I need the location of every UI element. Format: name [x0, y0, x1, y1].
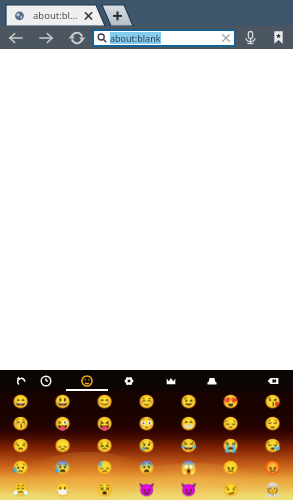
button[interactable]: Travel [191, 370, 233, 391]
button[interactable]: about:blank [94, 31, 234, 45]
button[interactable]: 😊 [83, 391, 125, 412]
staticText: ☺️ [138, 394, 155, 409]
staticText: 😢 [138, 438, 155, 453]
staticText: 👳 [264, 482, 281, 497]
staticText: about:bl… [33, 9, 78, 22]
staticText: 😁 [180, 416, 197, 431]
button[interactable]: about:bl… [6, 5, 82, 26]
staticText: 😵 [96, 482, 113, 497]
staticText: 😔 [222, 416, 239, 431]
button[interactable]: Close tab [82, 6, 96, 20]
button[interactable]: 😤 [0, 478, 41, 500]
staticText: 😌 [264, 416, 281, 431]
button[interactable]: 😏 [209, 478, 251, 500]
staticText: 😘 [264, 394, 281, 409]
button[interactable]: 😪 [251, 434, 293, 456]
staticText: 😓 [96, 460, 113, 475]
button[interactable]: 😍 [209, 391, 251, 412]
button[interactable]: Back [0, 26, 31, 49]
staticText: 😏 [222, 482, 239, 497]
button[interactable]: 😁 [167, 412, 209, 434]
staticText: 😂 [180, 438, 197, 453]
staticText: 😥 [12, 460, 29, 475]
button[interactable]: Backspace [252, 370, 293, 391]
button[interactable]: 😰 [41, 456, 83, 478]
button[interactable]: 😳 [125, 412, 167, 434]
button[interactable]: 😌 [251, 412, 293, 434]
staticText: 😳 [138, 416, 155, 431]
staticText: 😃 [54, 394, 71, 409]
button[interactable]: Undo [4, 370, 37, 391]
button[interactable]: 👿 [125, 478, 167, 500]
staticText: 👿 [138, 482, 155, 497]
button[interactable]: 😢 [125, 434, 167, 456]
staticText: 😭 [222, 438, 239, 453]
staticText: 😷 [54, 482, 71, 497]
button[interactable]: 😷 [41, 478, 83, 500]
button[interactable]: 😣 [83, 434, 125, 456]
staticText: 😞 [54, 438, 71, 453]
button[interactable]: 😉 [167, 391, 209, 412]
staticText: 😝 [96, 416, 113, 431]
button[interactable]: 😈 [167, 478, 209, 500]
button[interactable]: 😜 [41, 412, 83, 434]
button[interactable]: 👳 [251, 478, 293, 500]
button[interactable]: 😂 [167, 434, 209, 456]
staticText: 😜 [54, 416, 71, 431]
staticText: 😣 [96, 438, 113, 453]
button[interactable]: 😓 [83, 456, 125, 478]
button[interactable]: 😔 [209, 412, 251, 434]
button[interactable]: 😡 [251, 456, 293, 478]
button[interactable]: 😝 [83, 412, 125, 434]
staticText: 😪 [264, 438, 281, 453]
button[interactable]: Voice search [236, 26, 264, 49]
staticText: 😒 [12, 438, 29, 453]
button[interactable]: 😥 [0, 456, 41, 478]
button[interactable]: Objects [150, 370, 192, 391]
button[interactable]: Forward [31, 26, 61, 49]
staticText: 😡 [264, 460, 281, 475]
button[interactable]: Nature [108, 370, 150, 391]
staticText: 😉 [180, 394, 197, 409]
button[interactable]: 😄 [0, 391, 41, 412]
button[interactable]: Bookmarks [264, 26, 293, 49]
staticText: 😚 [12, 416, 29, 431]
button[interactable]: Smileys [66, 370, 108, 391]
staticText: 😤 [12, 482, 29, 497]
staticText: 😰 [54, 460, 71, 475]
button[interactable]: 😃 [41, 391, 83, 412]
button[interactable]: 😞 [41, 434, 83, 456]
button[interactable]: New tab [104, 5, 130, 26]
staticText: 😊 [96, 394, 113, 409]
button[interactable]: ☺️ [125, 391, 167, 412]
staticText: 😱 [180, 460, 197, 475]
staticText: 😍 [222, 394, 239, 409]
button[interactable]: 😘 [251, 391, 293, 412]
button[interactable]: Recent [33, 370, 58, 391]
staticText: 😨 [138, 460, 155, 475]
staticText: 😄 [12, 394, 29, 409]
button[interactable]: 😠 [209, 456, 251, 478]
button[interactable]: 😨 [125, 456, 167, 478]
staticText: 😈 [180, 482, 197, 497]
staticText: about:blank [110, 32, 161, 44]
button[interactable]: 😒 [0, 434, 41, 456]
button[interactable]: Reload [61, 26, 92, 49]
button[interactable]: 😵 [83, 478, 125, 500]
button[interactable]: 😭 [209, 434, 251, 456]
button[interactable]: 😚 [0, 412, 41, 434]
button[interactable]: 😱 [167, 456, 209, 478]
staticText: 😠 [222, 460, 239, 475]
